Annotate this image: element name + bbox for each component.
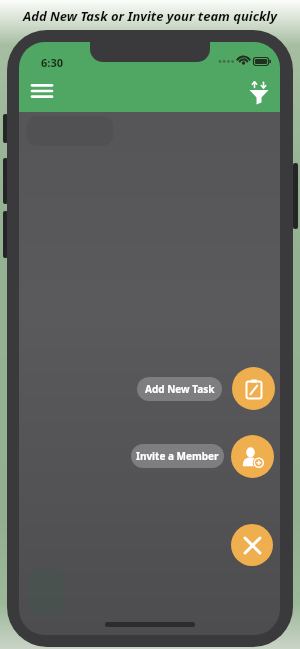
- staticText: Invite a Member: [136, 449, 219, 463]
- button[interactable]: [231, 435, 274, 478]
- staticText: 6:30: [41, 55, 63, 70]
- button[interactable]: [231, 524, 273, 566]
- button[interactable]: Add New Task: [137, 377, 222, 401]
- staticText: Add New Task: [145, 382, 215, 396]
- button[interactable]: Invite a Member: [131, 444, 224, 468]
- staticText: Add New Task or Invite your team quickly: [0, 7, 300, 25]
- button[interactable]: [247, 80, 273, 106]
- button[interactable]: [27, 79, 59, 105]
- button[interactable]: [232, 367, 275, 410]
